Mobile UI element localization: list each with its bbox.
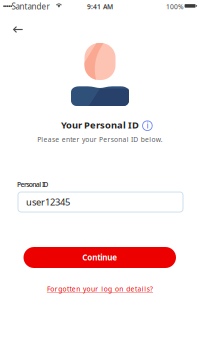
- staticText: Continue: [82, 252, 117, 263]
- staticText: 9:41 AM: [87, 2, 113, 11]
- staticText: Please enter your Personal ID below.: [37, 135, 163, 144]
- button[interactable]: Forgotten your log on details?: [0, 284, 200, 294]
- staticText: Your Personal ID: [61, 119, 139, 131]
- staticText: user12345: [26, 196, 70, 208]
- staticText: i: [146, 120, 148, 131]
- staticText: 100%: [166, 2, 184, 11]
- staticText: Personal ID: [17, 180, 48, 189]
- button[interactable]: Continue: [23, 247, 176, 268]
- staticText: Santander: [12, 1, 50, 12]
- button[interactable]: What is my Personal ID?: [143, 121, 152, 130]
- staticText: Forgotten your log on details?: [47, 285, 153, 293]
- button[interactable]: user12345: [18, 192, 183, 212]
- button[interactable]: Back: [4, 17, 32, 42]
